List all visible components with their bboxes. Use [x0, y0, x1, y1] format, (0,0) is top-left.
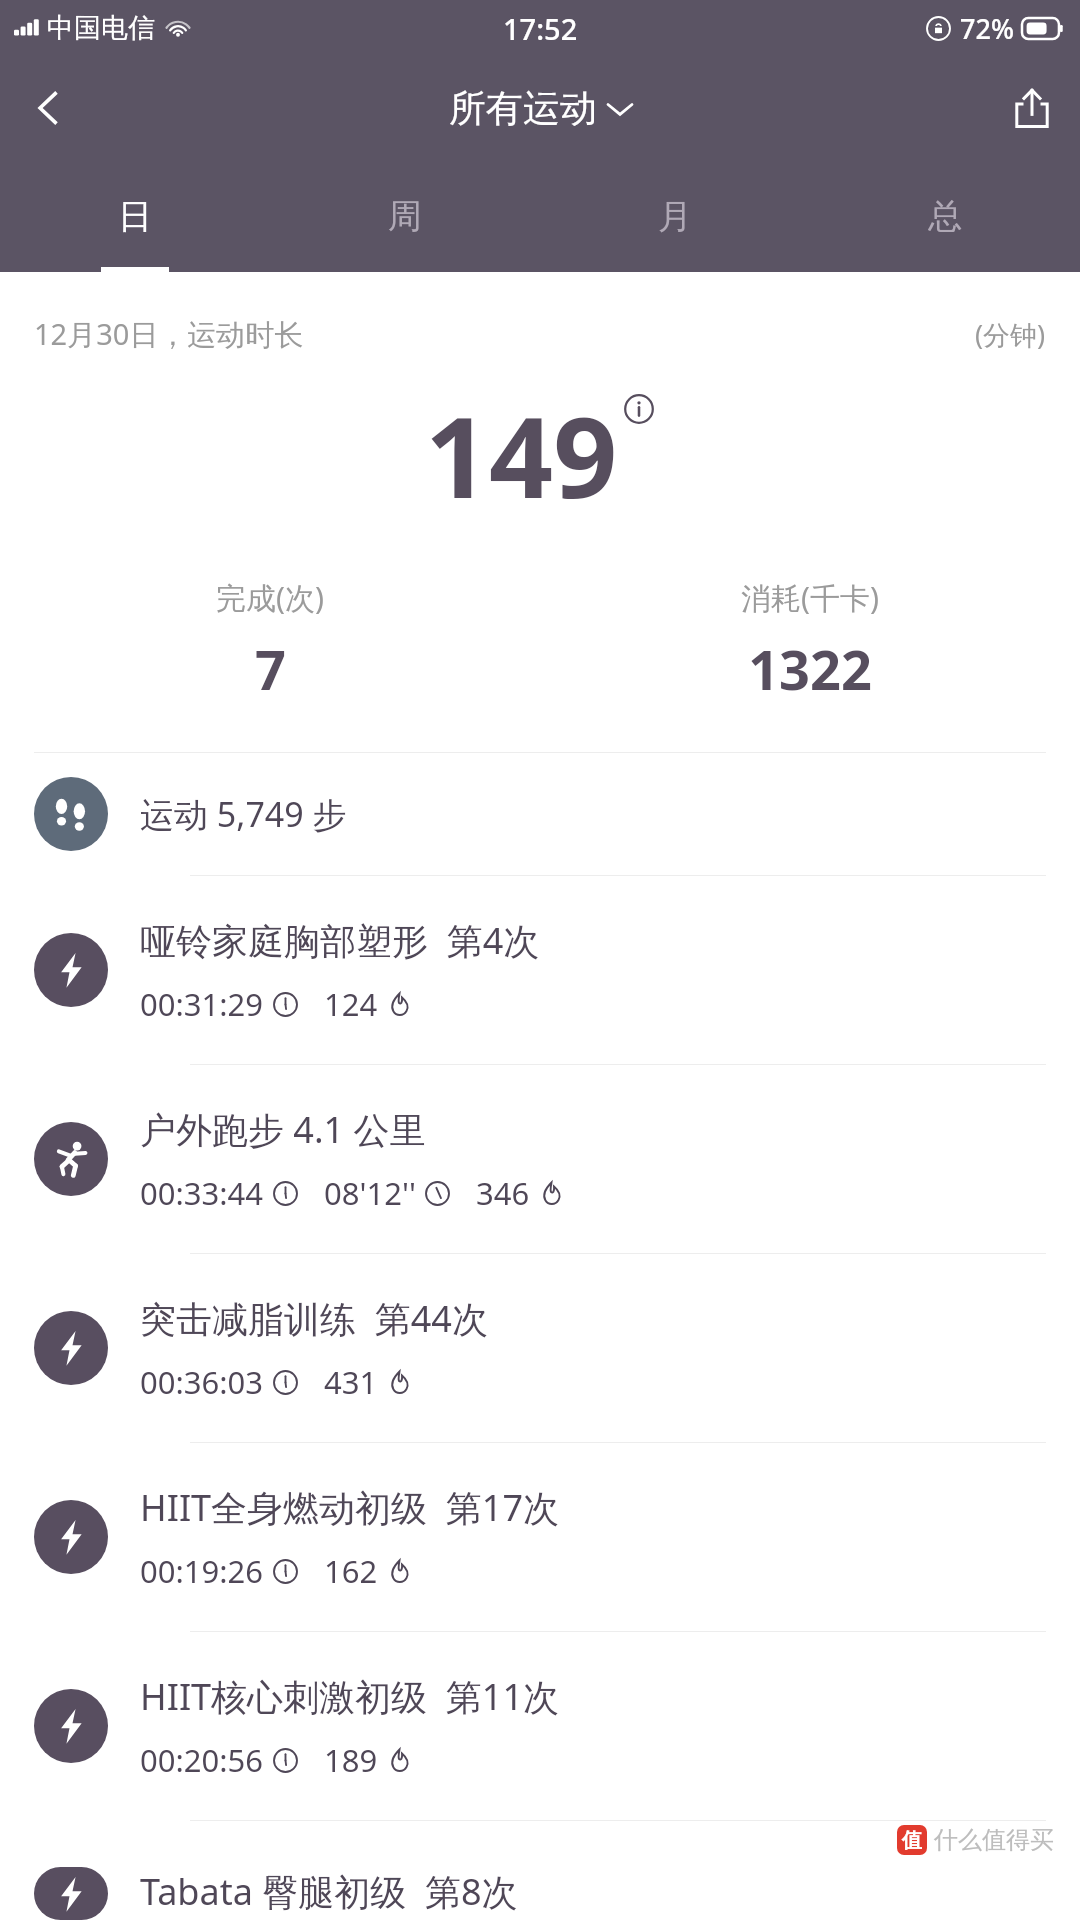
- staticText: HIIT核心刺激初级 第11次: [140, 1672, 560, 1721]
- staticText: 124: [324, 983, 378, 1025]
- button[interactable]: 户外跑步 4.1 公里: [0, 1065, 1080, 1253]
- staticText: 什么值得买: [934, 1825, 1054, 1855]
- button[interactable]: HIIT核心刺激初级 第11次: [0, 1632, 1080, 1820]
- button[interactable]: Share: [984, 60, 1080, 156]
- staticText: 消耗(千卡): [741, 577, 879, 618]
- staticText: 1322: [748, 632, 872, 706]
- staticText: 突击减脂训练 第44次: [140, 1294, 488, 1343]
- staticText: (分钟): [975, 316, 1046, 353]
- button[interactable]: 总: [810, 160, 1080, 272]
- staticText: 00:20:56: [140, 1739, 264, 1781]
- staticText: Tabata 臀腿初级 第8次: [140, 1867, 518, 1916]
- staticText: 346: [476, 1172, 530, 1214]
- staticText: 12月30日，运动时长: [34, 314, 304, 354]
- staticText: 189: [324, 1739, 378, 1781]
- staticText: 户外跑步 4.1 公里: [140, 1105, 426, 1154]
- staticText: 00:31:29: [140, 983, 264, 1025]
- staticText: 431: [324, 1361, 378, 1403]
- button[interactable]: 月: [540, 160, 810, 272]
- staticText: 72%: [960, 10, 1014, 47]
- button[interactable]: HIIT全身燃动初级 第17次: [0, 1443, 1080, 1631]
- button[interactable]: Info: [622, 392, 656, 426]
- staticText: 7: [255, 632, 286, 706]
- staticText: 162: [324, 1550, 378, 1592]
- button[interactable]: Tabata 臀腿初级 第8次: [0, 1821, 1080, 1920]
- button[interactable]: 日: [0, 160, 270, 272]
- staticText: 月: [658, 195, 692, 238]
- button[interactable]: 完成(次): [0, 577, 540, 706]
- staticText: HIIT全身燃动初级 第17次: [140, 1483, 560, 1532]
- staticText: 00:33:44: [140, 1172, 264, 1214]
- staticText: 周: [388, 195, 422, 238]
- staticText: 运动 5,749 步: [140, 791, 347, 837]
- staticText: 日: [118, 195, 152, 238]
- staticText: 149: [425, 378, 618, 531]
- button[interactable]: Back: [0, 60, 96, 156]
- staticText: 值: [902, 1828, 922, 1853]
- staticText: 08'12'': [324, 1172, 416, 1214]
- staticText: 中国电信: [47, 11, 155, 45]
- button[interactable]: 运动 5,749 步: [0, 753, 1080, 875]
- staticText: 总: [928, 195, 962, 238]
- staticText: 所有运动: [449, 85, 597, 132]
- button[interactable]: 突击减脂训练 第44次: [0, 1254, 1080, 1442]
- button[interactable]: 所有运动: [439, 79, 642, 138]
- staticText: 哑铃家庭胸部塑形 第4次: [140, 916, 540, 965]
- button[interactable]: 消耗(千卡): [540, 577, 1080, 706]
- button[interactable]: 哑铃家庭胸部塑形 第4次: [0, 876, 1080, 1064]
- staticText: 00:36:03: [140, 1361, 264, 1403]
- staticText: 00:19:26: [140, 1550, 264, 1592]
- button[interactable]: 周: [270, 160, 540, 272]
- staticText: 17:52: [503, 9, 578, 48]
- staticText: 完成(次): [216, 577, 324, 618]
